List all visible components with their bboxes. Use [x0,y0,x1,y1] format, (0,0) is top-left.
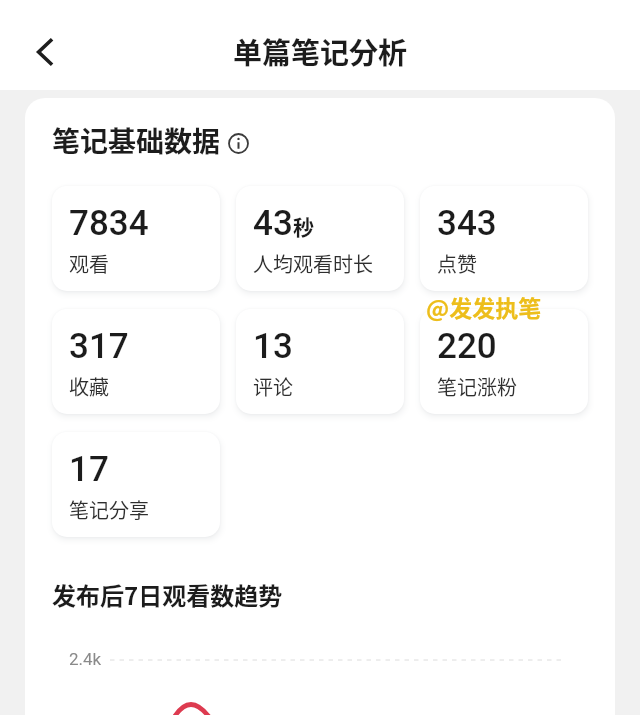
button[interactable]: Back [17,24,73,80]
button[interactable]: Info [225,130,251,156]
button[interactable]: 7834 [52,186,220,291]
staticText: 43 [253,203,293,244]
staticText: 人均观看时长 [253,249,373,278]
button[interactable]: 17 [52,432,220,537]
button[interactable]: 343 [420,186,588,291]
staticText: @发发执笔 [426,290,542,323]
staticText: 收藏 [69,372,109,401]
staticText: 2.4k [69,649,102,669]
staticText: 秒 [293,211,314,241]
staticText: 笔记基础数据 [52,120,221,161]
button[interactable]: 317 [52,309,220,414]
staticText: 317 [69,326,129,367]
staticText: 评论 [253,372,293,401]
staticText: 点赞 [437,249,477,278]
button[interactable]: 43 [236,186,404,291]
staticText: 观看 [69,249,109,278]
staticText: 7834 [69,203,149,244]
staticText: 17 [69,449,109,490]
staticText: 发布后7日观看数趋势 [52,577,283,612]
staticText: 13 [253,326,293,367]
staticText: 220 [437,326,497,367]
button[interactable]: 220 [420,309,588,414]
staticText: 笔记涨粉 [437,372,517,401]
staticText: 343 [437,203,497,244]
staticText: 单篇笔记分析 [233,30,408,72]
button[interactable]: 13 [236,309,404,414]
staticText: 笔记分享 [69,495,149,524]
